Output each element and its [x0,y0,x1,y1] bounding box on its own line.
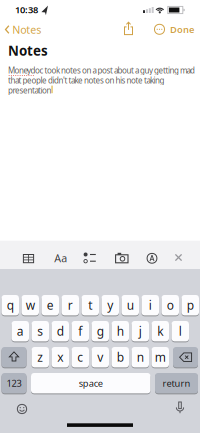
staticText: y [107,297,113,313]
staticText: g [97,323,104,339]
button[interactable] [173,346,198,368]
staticText: presentation [8,85,51,96]
button[interactable]: a [11,320,29,342]
button[interactable]: z [31,346,49,368]
staticText: 10:38 [15,3,38,16]
staticText: z [37,349,43,365]
button[interactable]: 123 [1,372,26,394]
button[interactable]: x [51,346,69,368]
staticText: space [79,377,103,389]
button[interactable] [20,250,37,267]
button[interactable]: return [155,372,198,394]
button[interactable]: w [21,294,39,316]
staticText: k [157,323,163,339]
button[interactable]: s [31,320,49,342]
staticText: Notes [12,22,41,37]
staticText: b [117,349,124,365]
button[interactable] [1,346,26,368]
button[interactable]: r [61,294,79,316]
button[interactable]: q [1,294,19,316]
staticText: Moneydoc took notes on a post about a gu… [8,65,195,76]
button[interactable]: Aa [53,250,69,266]
staticText: d [57,323,64,339]
button[interactable]: Notes [5,23,41,37]
button[interactable]: i [141,294,159,316]
staticText: h [117,323,124,339]
staticText: m [155,349,166,365]
staticText: Notes [8,42,48,59]
button[interactable] [152,22,166,36]
button[interactable]: d [51,320,69,342]
staticText: o [167,297,174,313]
button[interactable] [121,21,135,36]
staticText: 123 [6,377,21,389]
staticText: i [149,297,152,313]
button[interactable]: m [151,346,169,368]
staticText: l [179,323,182,339]
button[interactable]: b [111,346,129,368]
button[interactable]: k [151,320,169,342]
staticText: v [97,349,103,365]
button[interactable]: u [121,294,139,316]
staticText: j [139,323,142,339]
button[interactable]: p [181,294,199,316]
staticText: w [26,297,35,313]
button[interactable]: o [161,294,179,316]
button[interactable]: t [81,294,99,316]
button[interactable]: e [41,294,59,316]
button[interactable]: f [71,320,89,342]
button[interactable]: n [131,346,149,368]
staticText: x [57,349,63,365]
staticText: q [7,297,14,313]
staticText: a [17,323,24,339]
staticText: s [37,323,43,339]
button[interactable] [170,249,186,265]
staticText: that people didn't take notes on his not… [8,75,164,86]
staticText: t [88,297,92,313]
button[interactable]: c [71,346,89,368]
staticText: Done [170,23,194,36]
button[interactable]: y [101,294,119,316]
button[interactable]: l [171,320,189,342]
staticText: return [162,377,190,389]
button[interactable]: space [31,372,150,394]
staticText: e [47,297,54,313]
staticText: u [127,297,134,313]
staticText: r [68,297,73,313]
staticText: Aa [54,251,67,265]
button[interactable]: v [91,346,109,368]
button[interactable] [15,402,29,416]
button[interactable] [114,250,130,266]
staticText: c [77,349,83,365]
button[interactable]: Done [167,22,197,36]
staticText: n [137,349,144,365]
button[interactable] [173,401,187,415]
staticText: f [78,323,82,339]
staticText: p [187,297,194,313]
button[interactable]: g [91,320,109,342]
button[interactable]: j [131,320,149,342]
button[interactable] [82,250,98,266]
button[interactable] [144,250,160,266]
button[interactable]: h [111,320,129,342]
